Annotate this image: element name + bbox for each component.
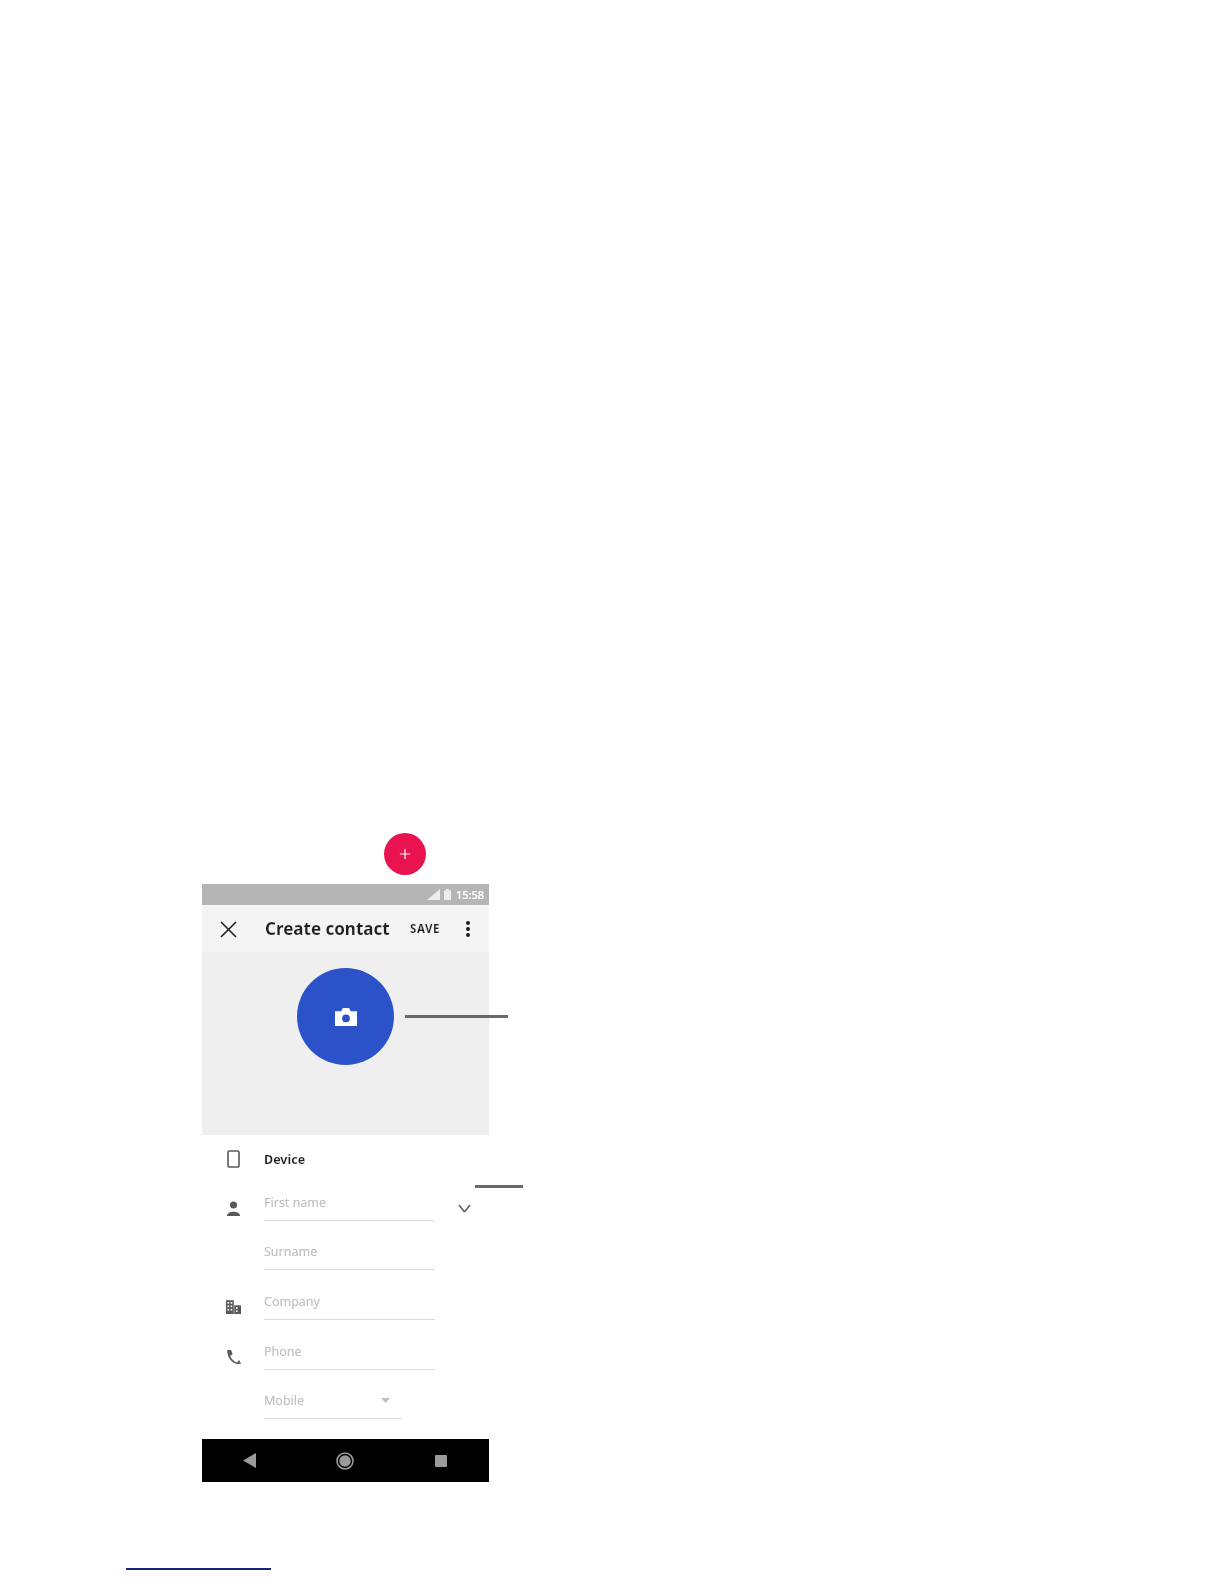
button[interactable]: Device — [202, 1135, 489, 1183]
staticText: Company — [264, 1293, 320, 1310]
staticText: 15:58 — [456, 887, 485, 902]
button[interactable]: More options — [453, 914, 483, 944]
button[interactable]: Add contact — [384, 833, 426, 875]
staticText: Phone — [264, 1343, 302, 1360]
staticText: Device — [264, 1151, 306, 1168]
button[interactable]: Back — [202, 1439, 297, 1482]
button[interactable]: Mobile — [264, 1392, 402, 1419]
staticText: Create contact — [265, 917, 390, 940]
button[interactable]: Phone — [264, 1343, 435, 1370]
staticText: Surname — [264, 1243, 318, 1260]
button[interactable]: Surname — [264, 1243, 435, 1270]
staticText: First name — [264, 1194, 327, 1211]
button[interactable]: Add photo — [297, 968, 394, 1065]
button[interactable]: First name — [264, 1194, 435, 1221]
staticText: Mobile — [264, 1392, 305, 1409]
button[interactable]: Home — [297, 1439, 393, 1482]
button[interactable]: Expand name fields — [453, 1197, 475, 1219]
button[interactable]: Company — [264, 1293, 435, 1320]
button[interactable]: Close — [212, 913, 244, 945]
staticText: SAVE — [410, 921, 441, 937]
button[interactable]: Recents — [393, 1439, 489, 1482]
button[interactable]: SAVE — [404, 915, 447, 943]
